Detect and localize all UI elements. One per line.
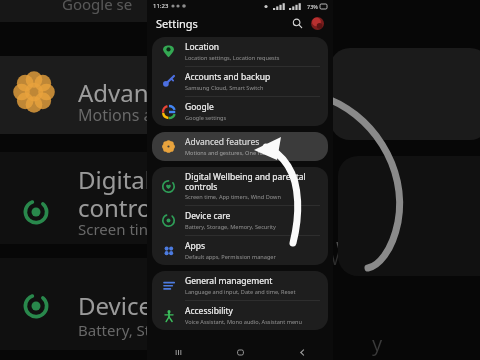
staticText: Location settings, Location requests [185, 54, 280, 62]
staticText: Google settings [185, 114, 227, 122]
button[interactable]: Search [288, 14, 306, 32]
button[interactable]: Advanced features [152, 132, 328, 161]
staticText: Screen tin [78, 219, 148, 239]
button[interactable]: Back [271, 344, 333, 360]
staticText: Digital [78, 163, 151, 196]
staticText: Samsung Cloud, Smart Switch [185, 84, 264, 92]
staticText: Language and input, Date and time, Reset [185, 288, 296, 296]
button[interactable]: Location [152, 37, 328, 66]
button[interactable]: Account [311, 17, 324, 30]
staticText: General management [185, 275, 273, 287]
staticText: y [372, 330, 383, 357]
staticText: Motions a [78, 104, 153, 126]
button[interactable]: Digital Wellbeing and parental controls [152, 167, 328, 205]
staticText: Default apps, Permission manager [185, 253, 276, 261]
staticText: Google [185, 101, 214, 113]
button[interactable]: Device care [152, 206, 328, 235]
staticText: Device [78, 289, 153, 322]
button[interactable]: Home [209, 344, 271, 360]
staticText: Battery, Storage, Memory, Security [185, 223, 276, 231]
button[interactable]: Recent apps [147, 344, 209, 360]
staticText: Settings [156, 16, 198, 31]
staticText: Location [185, 41, 220, 53]
staticText: Screen time, App timers, Wind Down [185, 193, 281, 201]
button[interactable]: General management [152, 271, 328, 300]
staticText: Motions and gestures, One hand [185, 149, 272, 157]
staticText: rental [336, 180, 403, 213]
staticText: Advanced features [185, 136, 260, 148]
staticText: Battery, St [78, 320, 151, 340]
staticText: Voice Assistant, Mono audio, Assistant m… [185, 318, 303, 326]
button[interactable]: Google [152, 97, 328, 126]
staticText: 73% [307, 3, 318, 10]
staticText: 11:23 [153, 2, 169, 10]
button[interactable]: Accounts and backup [152, 67, 328, 96]
staticText: Digital Wellbeing and parental controls [185, 171, 320, 192]
staticText: Device care [185, 210, 231, 222]
button[interactable]: Advanced features [152, 132, 328, 161]
staticText: Accessibility [185, 305, 233, 317]
staticText: Advanc [78, 76, 161, 109]
staticText: control [78, 191, 158, 224]
staticText: wn [336, 232, 365, 259]
button[interactable]: Apps [152, 236, 328, 265]
button[interactable]: Accessibility [152, 301, 328, 330]
staticText: W [330, 244, 349, 271]
staticText: Accounts and backup [185, 71, 271, 83]
staticText: Google se [62, 0, 133, 14]
staticText: Apps [185, 240, 205, 252]
